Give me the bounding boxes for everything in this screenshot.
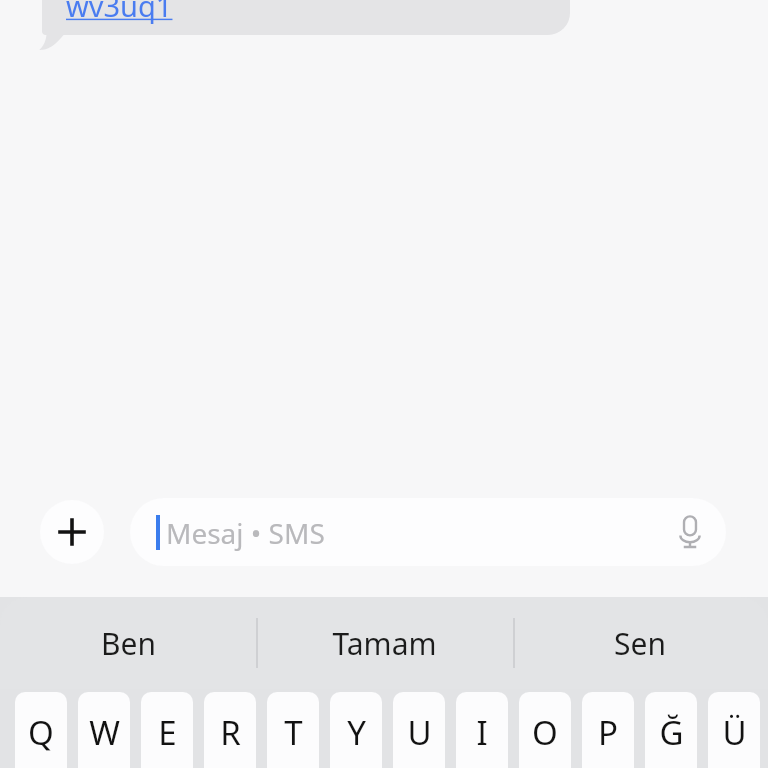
staticText: Q <box>28 710 54 755</box>
button[interactable]: Ben <box>0 603 256 683</box>
staticText: W <box>89 710 120 755</box>
staticText: wv3uq1 <box>66 0 173 25</box>
staticText: Ü <box>722 710 747 755</box>
staticText: Ben <box>101 623 156 664</box>
staticText: Y <box>347 710 366 755</box>
button[interactable]: Ğ <box>645 692 697 768</box>
button[interactable]: Add attachment <box>40 500 104 564</box>
button[interactable]: Voice input <box>666 508 714 556</box>
button[interactable]: Sen <box>512 603 768 683</box>
button[interactable]: P <box>582 692 634 768</box>
button[interactable]: U <box>393 692 445 768</box>
staticText: Mesaj • SMS <box>166 514 325 552</box>
button[interactable]: I <box>456 692 508 768</box>
staticText: T <box>284 710 303 755</box>
staticText: P <box>598 710 618 755</box>
button[interactable]: T <box>267 692 319 768</box>
button[interactable]: Tamam <box>256 603 512 683</box>
staticText: I <box>476 710 488 755</box>
staticText: Ğ <box>659 710 684 755</box>
staticText: Sen <box>614 623 666 664</box>
button[interactable]: Ü <box>708 692 760 768</box>
button[interactable]: E <box>141 692 193 768</box>
button[interactable]: O <box>519 692 571 768</box>
staticText: E <box>158 710 177 755</box>
button[interactable]: W <box>78 692 130 768</box>
staticText: R <box>220 710 241 755</box>
staticText: U <box>407 710 432 755</box>
button[interactable] <box>42 0 570 35</box>
staticText: O <box>532 710 558 755</box>
button[interactable]: R <box>204 692 256 768</box>
button[interactable]: Mesaj • SMS <box>130 498 726 566</box>
button[interactable]: Y <box>330 692 382 768</box>
button[interactable]: Q <box>15 692 67 768</box>
staticText: Tamam <box>332 623 437 664</box>
